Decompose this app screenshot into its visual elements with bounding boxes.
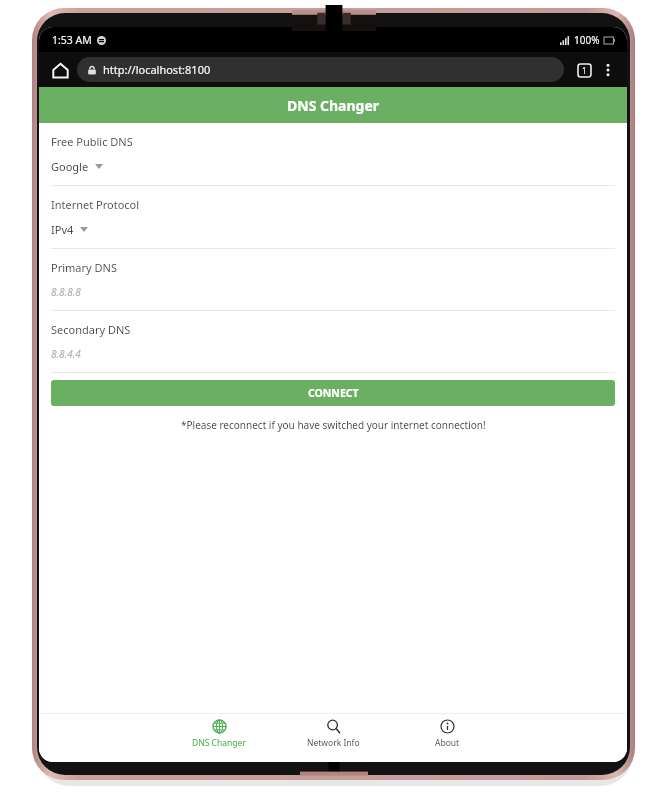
- button[interactable]: Network Info: [295, 718, 371, 750]
- button[interactable]: DNS Changer: [181, 718, 257, 750]
- staticText: http://localhost:8100: [103, 62, 211, 77]
- staticText: CONNECT: [308, 386, 359, 400]
- staticText: Internet Protocol: [51, 197, 140, 212]
- button[interactable]: Primary DNS: [39, 249, 627, 311]
- staticText: IPv4: [51, 222, 74, 237]
- staticText: 8.8.8.8: [51, 285, 81, 299]
- staticText: 8.8.4.4: [51, 347, 81, 361]
- staticText: 1: [582, 65, 587, 76]
- button[interactable]: More options: [597, 59, 619, 81]
- button[interactable]: CONNECT: [51, 380, 615, 406]
- staticText: About: [435, 737, 460, 749]
- button[interactable]: Secondary DNS: [39, 311, 627, 373]
- button[interactable]: Home: [47, 57, 73, 83]
- staticText: Free Public DNS: [51, 134, 133, 149]
- button[interactable]: About: [409, 718, 485, 750]
- button[interactable]: Free Public DNS: [39, 123, 627, 186]
- staticText: Primary DNS: [51, 260, 117, 275]
- button[interactable]: http://localhost:8100: [77, 57, 564, 82]
- staticText: 100%: [574, 33, 600, 47]
- button[interactable]: Internet Protocol: [39, 186, 627, 249]
- staticText: Network Info: [307, 737, 360, 749]
- staticText: DNS Changer: [287, 96, 380, 115]
- button[interactable]: Tabs: [573, 59, 595, 81]
- staticText: 1:53 AM: [52, 33, 92, 47]
- staticText: *Please reconnect if you have switched y…: [181, 418, 486, 432]
- staticText: Google: [51, 159, 89, 174]
- staticText: DNS Changer: [192, 737, 246, 749]
- staticText: Secondary DNS: [51, 322, 131, 337]
